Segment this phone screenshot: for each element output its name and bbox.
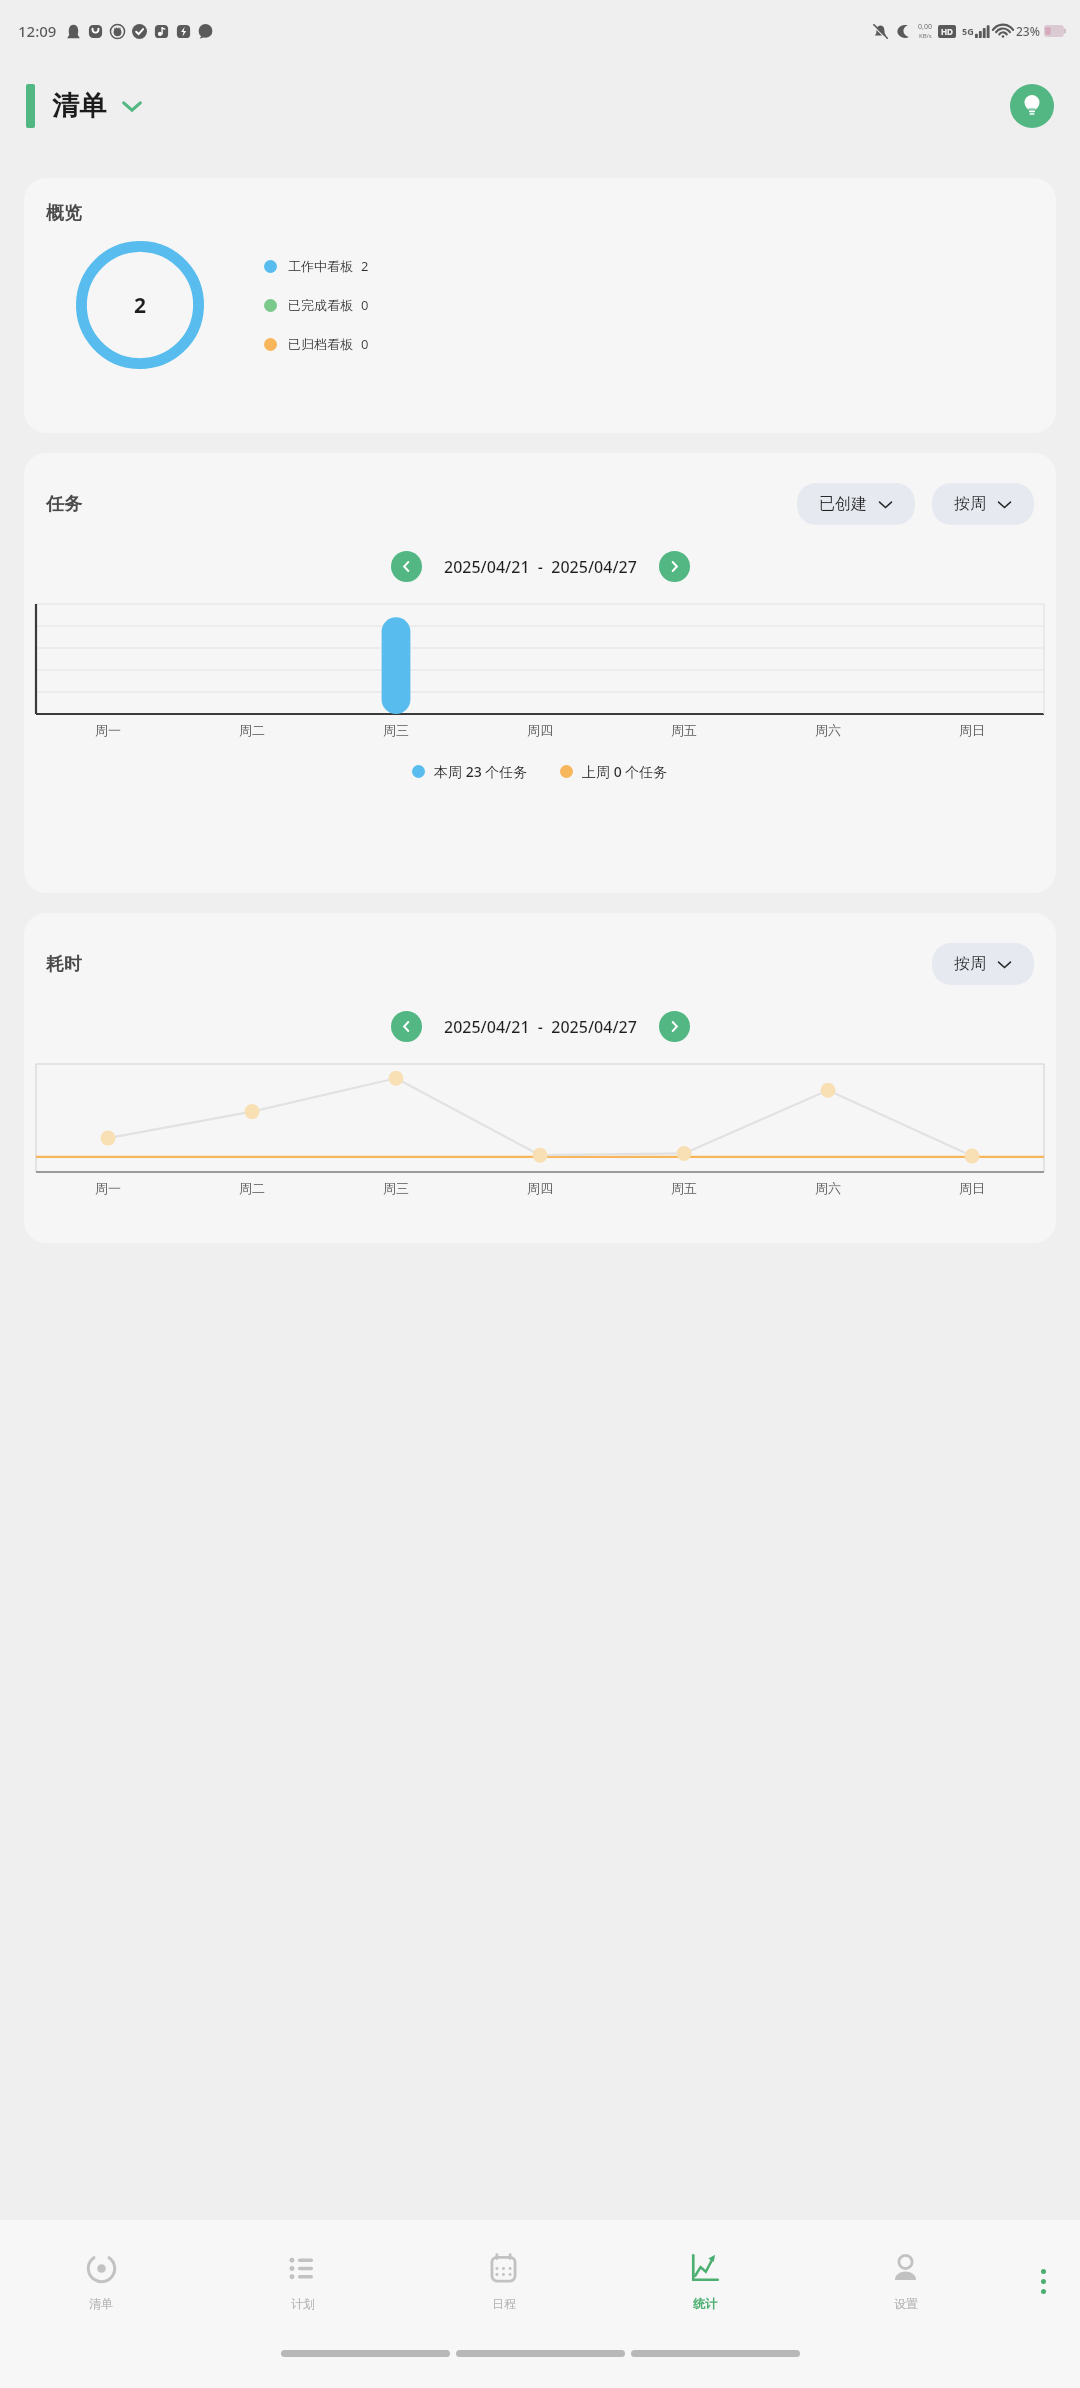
staticText: 周日 bbox=[900, 1180, 1044, 1196]
staticText: 周二 bbox=[180, 1180, 324, 1196]
staticText: 统计 bbox=[693, 2296, 717, 2311]
staticText: 周三 bbox=[324, 722, 468, 738]
button[interactable]: 计划 bbox=[202, 2220, 403, 2342]
staticText: 概览 bbox=[46, 202, 82, 225]
staticText: 5G bbox=[962, 25, 974, 37]
staticText: 设置 bbox=[894, 2296, 918, 2311]
button[interactable]: 清单 bbox=[26, 84, 145, 128]
staticText: 上周 0 个任务 bbox=[582, 762, 668, 781]
button[interactable]: 上一周 bbox=[391, 1011, 422, 1042]
staticText: 清单 bbox=[89, 2296, 113, 2311]
staticText: 2 bbox=[134, 291, 147, 320]
staticText: 按周 bbox=[954, 494, 986, 514]
staticText: 2 bbox=[361, 257, 369, 275]
staticText: 2025/04/21 - 2025/04/27 bbox=[444, 556, 637, 578]
staticText: 耗时 bbox=[46, 953, 82, 976]
staticText: 0,00 bbox=[918, 22, 932, 32]
button[interactable]: 已创建 bbox=[797, 483, 915, 525]
button[interactable]: 设置 bbox=[805, 2220, 1006, 2342]
staticText: 已创建 bbox=[819, 494, 867, 514]
staticText: 周日 bbox=[900, 722, 1044, 738]
staticText: 周四 bbox=[468, 722, 612, 738]
staticText: 工作中看板 bbox=[288, 258, 353, 274]
staticText: KB/s bbox=[919, 32, 932, 40]
staticText: 周五 bbox=[612, 1180, 756, 1196]
staticText: 已归档看板 bbox=[288, 336, 353, 352]
staticText: HD bbox=[941, 26, 953, 37]
staticText: 按周 bbox=[954, 954, 986, 974]
button[interactable]: 提示 bbox=[1010, 84, 1054, 128]
button[interactable]: 更多 bbox=[1006, 2220, 1080, 2342]
button[interactable]: 上一周 bbox=[391, 551, 422, 582]
staticText: 日程 bbox=[492, 2296, 516, 2311]
staticText: 23% bbox=[1016, 23, 1040, 39]
button[interactable]: 下一周 bbox=[659, 551, 690, 582]
staticText: 周三 bbox=[324, 1180, 468, 1196]
button[interactable]: 统计 bbox=[604, 2220, 805, 2342]
button[interactable]: 按周 bbox=[932, 483, 1034, 525]
button[interactable]: 下一周 bbox=[659, 1011, 690, 1042]
button[interactable]: 日程 bbox=[403, 2220, 604, 2342]
staticText: 任务 bbox=[46, 493, 82, 516]
staticText: 计划 bbox=[291, 2296, 315, 2311]
staticText: 本周 23 个任务 bbox=[434, 762, 528, 781]
staticText: 12:09 bbox=[18, 21, 57, 41]
staticText: 2025/04/21 - 2025/04/27 bbox=[444, 1016, 637, 1038]
button[interactable]: 按周 bbox=[932, 943, 1034, 985]
staticText: 周一 bbox=[36, 722, 180, 738]
button[interactable]: 清单 bbox=[0, 2220, 202, 2342]
staticText: 周一 bbox=[36, 1180, 180, 1196]
staticText: 0 bbox=[361, 335, 369, 353]
staticText: 周四 bbox=[468, 1180, 612, 1196]
staticText: 周二 bbox=[180, 722, 324, 738]
staticText: 已完成看板 bbox=[288, 297, 353, 313]
staticText: 周五 bbox=[612, 722, 756, 738]
staticText: 清单 bbox=[52, 89, 106, 123]
staticText: 周六 bbox=[756, 722, 900, 738]
staticText: 周六 bbox=[756, 1180, 900, 1196]
staticText: 0 bbox=[361, 296, 369, 314]
